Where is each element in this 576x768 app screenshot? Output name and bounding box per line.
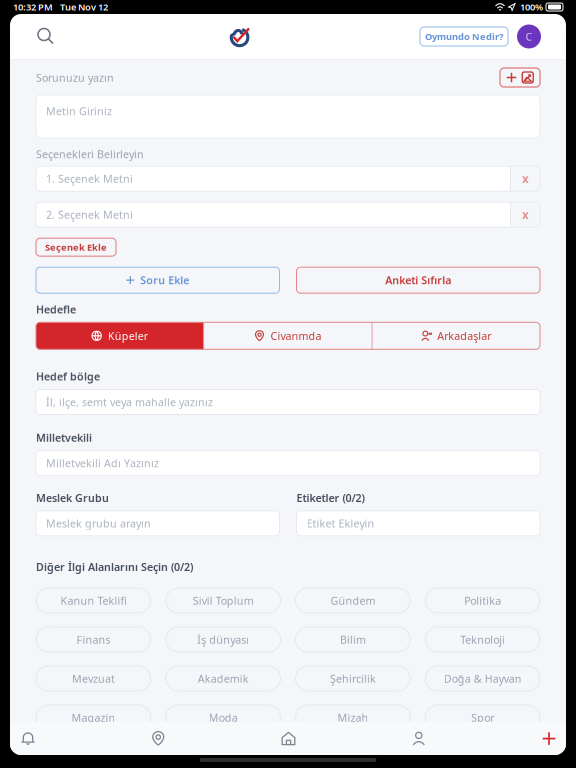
- button[interactable]: Teknoloji: [425, 627, 540, 652]
- button[interactable]: Bilim: [295, 627, 410, 652]
- staticText: Akademik: [198, 671, 249, 686]
- staticText: 1. Seçenek Metni: [46, 172, 133, 186]
- button[interactable]: Nearby: [142, 722, 174, 755]
- staticText: Anketi Sıfırla: [385, 273, 451, 287]
- staticText: Meslek Grubu: [36, 491, 109, 505]
- staticText: Soru Ekle: [140, 273, 189, 287]
- staticText: Moda: [209, 710, 238, 725]
- button[interactable]: Magazin: [36, 705, 151, 730]
- button[interactable]: Soru Ekle: [36, 267, 279, 293]
- staticText: Mizah: [337, 710, 368, 725]
- staticText: İl, ilçe, semt veya mahalle yazınız: [46, 395, 213, 409]
- button[interactable]: Create: [533, 722, 565, 755]
- button[interactable]: İş dünyası: [166, 627, 281, 652]
- button[interactable]: Anketi Sıfırla: [296, 267, 540, 293]
- button[interactable]: Şehircilik: [295, 666, 410, 691]
- button[interactable]: Moda: [166, 705, 281, 730]
- button[interactable]: Profile: [403, 722, 435, 755]
- button[interactable]: Gündem: [295, 588, 410, 613]
- button[interactable]: Politika: [425, 588, 540, 613]
- staticText: x: [522, 171, 529, 187]
- button[interactable]: Civarımda: [204, 322, 372, 349]
- staticText: Milletvekili: [36, 430, 92, 445]
- staticText: Spor: [471, 710, 494, 725]
- button[interactable]: Home: [272, 722, 304, 755]
- staticText: İş dünyası: [197, 632, 249, 647]
- staticText: Etiket Ekleyin: [306, 516, 374, 530]
- button[interactable]: Akademik: [166, 666, 281, 691]
- staticText: Civarımda: [270, 329, 321, 343]
- staticText: Küpeler: [108, 329, 148, 343]
- staticText: Seçenekleri Belirleyin: [36, 147, 144, 161]
- button[interactable]: Sivil Toplum: [166, 588, 281, 613]
- staticText: Doğa & Hayvan: [444, 671, 522, 686]
- button[interactable]: Arkadaşlar: [373, 322, 540, 349]
- staticText: Teknoloji: [460, 632, 505, 647]
- staticText: Finans: [76, 632, 110, 647]
- button[interactable]: Notifications: [12, 722, 44, 755]
- staticText: Metin Giriniz: [46, 104, 112, 118]
- staticText: Oymundo Nedir?: [425, 30, 503, 43]
- staticText: 2. Seçenek Metni: [46, 208, 133, 222]
- button[interactable]: Seçenek Ekle: [36, 238, 116, 256]
- staticText: Milletvekili Adı Yazınız: [46, 456, 159, 470]
- staticText: Kanun Teklifi: [60, 593, 126, 608]
- staticText: Hedef bölge: [36, 369, 100, 383]
- staticText: Tue Nov 12: [60, 1, 108, 13]
- staticText: 10:32 PM: [13, 1, 53, 13]
- staticText: Politika: [464, 593, 501, 608]
- staticText: Sorunuzu yazın: [36, 70, 114, 85]
- button[interactable]: Search: [27, 17, 59, 55]
- button[interactable]: Küpeler: [36, 322, 203, 349]
- staticText: Şehircilik: [330, 671, 376, 686]
- staticText: Gündem: [330, 593, 375, 608]
- button[interactable]: Mizah: [295, 705, 410, 730]
- staticText: Etiketler (0/2): [296, 491, 364, 505]
- button[interactable]: Spor: [425, 705, 540, 730]
- button[interactable]: Finans: [36, 627, 151, 652]
- button[interactable]: Remove option: [511, 166, 540, 191]
- staticText: 100%: [520, 1, 543, 13]
- staticText: Seçenek Ekle: [45, 241, 107, 253]
- button[interactable]: Mevzuat: [36, 666, 151, 691]
- staticText: Meslek grubu arayın: [46, 516, 151, 530]
- button[interactable]: Remove option: [511, 202, 540, 227]
- staticText: Arkadaşlar: [437, 329, 491, 343]
- button[interactable]: Doğa & Hayvan: [425, 666, 540, 691]
- staticText: x: [522, 207, 529, 223]
- button[interactable]: Oymundo Nedir?: [420, 27, 508, 46]
- button[interactable]: Kanun Teklifi: [36, 588, 151, 613]
- staticText: Diğer İlgi Alanlarını Seçin (0/2): [36, 560, 193, 574]
- staticText: Magazin: [71, 710, 115, 725]
- staticText: C: [525, 29, 532, 44]
- button[interactable]: Profile: [508, 24, 541, 48]
- staticText: Hedefle: [36, 302, 76, 316]
- staticText: Bilim: [340, 632, 366, 647]
- staticText: Mevzuat: [72, 671, 115, 686]
- staticText: Sivil Toplum: [193, 593, 254, 608]
- button[interactable]: Add image: [500, 68, 540, 87]
